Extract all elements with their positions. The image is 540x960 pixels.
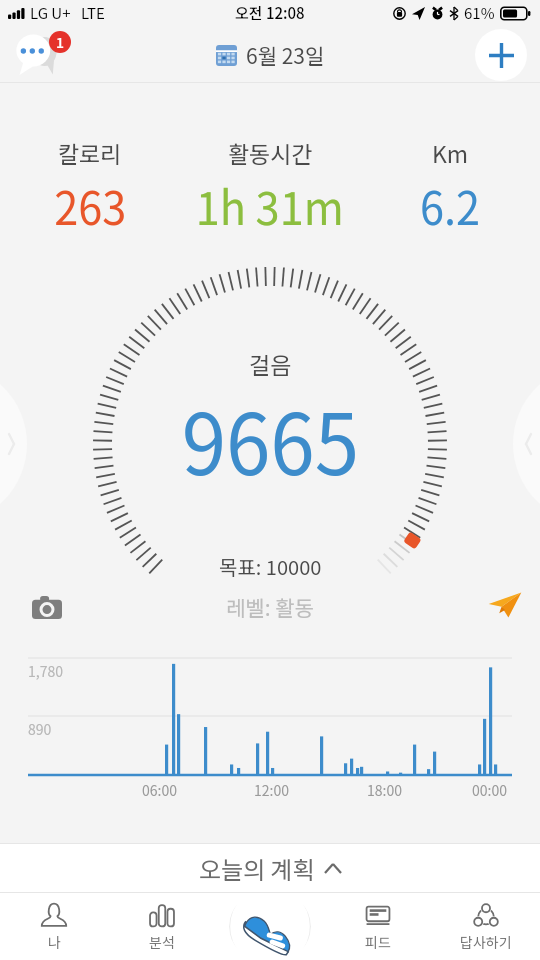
staticText: 9665 bbox=[182, 376, 359, 499]
button[interactable]: Km bbox=[360, 136, 540, 239]
button[interactable]: 분석 bbox=[108, 893, 216, 960]
button[interactable]: 칼로리 bbox=[0, 136, 180, 239]
button[interactable]: 피드 bbox=[324, 893, 432, 960]
staticText: 263 bbox=[54, 172, 127, 239]
button[interactable]: 오늘의 계획 bbox=[0, 844, 540, 892]
staticText: 걸음 bbox=[249, 347, 292, 380]
staticText: 목표: 10000 bbox=[219, 552, 322, 581]
button[interactable]: 나 bbox=[0, 893, 108, 960]
staticText: 890 bbox=[28, 719, 52, 739]
staticText: 분석 bbox=[149, 932, 175, 952]
staticText: 나 bbox=[48, 932, 61, 952]
button[interactable]: 활동시간 bbox=[180, 136, 360, 239]
staticText: 12:00 bbox=[254, 780, 289, 800]
button[interactable]: Send bbox=[485, 584, 525, 624]
staticText: 18:00 bbox=[367, 780, 402, 800]
button[interactable]: 답사하기 bbox=[432, 893, 540, 960]
staticText: 61% bbox=[464, 2, 495, 24]
staticText: 피드 bbox=[365, 932, 391, 952]
button[interactable]: Walk bbox=[229, 893, 311, 960]
button[interactable]: Add bbox=[475, 29, 527, 81]
staticText: LG U+ bbox=[30, 2, 71, 24]
staticText: 오늘의 계획 bbox=[199, 851, 315, 886]
staticText: 1h 31m bbox=[196, 172, 344, 239]
staticText: 6월 23일 bbox=[246, 40, 325, 70]
staticText: 레벨: 활동 bbox=[226, 592, 314, 622]
staticText: 칼로리 bbox=[58, 136, 122, 169]
button[interactable]: Camera bbox=[27, 589, 67, 625]
button[interactable]: 6월 23일 bbox=[216, 40, 325, 70]
staticText: 오전 12:08 bbox=[235, 2, 305, 24]
staticText: LTE bbox=[81, 2, 105, 24]
staticText: 답사하기 bbox=[460, 932, 512, 952]
staticText: 00:00 bbox=[472, 780, 507, 800]
staticText: 활동시간 bbox=[228, 136, 313, 169]
staticText: 1 bbox=[56, 32, 64, 52]
staticText: 6.2 bbox=[420, 172, 480, 239]
staticText: 1,780 bbox=[28, 661, 63, 681]
staticText: Km bbox=[432, 136, 469, 169]
button[interactable]: Messages bbox=[8, 28, 72, 78]
staticText: 06:00 bbox=[142, 780, 177, 800]
